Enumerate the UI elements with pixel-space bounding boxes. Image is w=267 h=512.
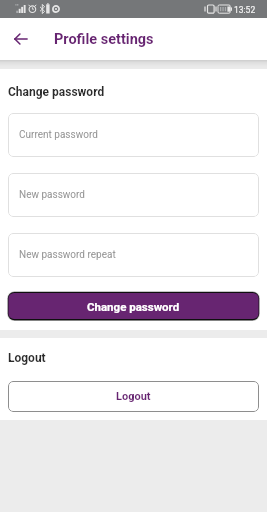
button[interactable]: Change password (7, 291, 260, 321)
staticText: Logout (8, 351, 46, 365)
staticText: Current password (19, 129, 98, 141)
staticText: 13:52 (234, 5, 256, 15)
staticText: Change password (8, 85, 105, 99)
staticText: New password (19, 189, 85, 201)
staticText: Logout (116, 390, 151, 403)
button[interactable]: New password repeat (8, 233, 259, 277)
button[interactable]: Current password (8, 113, 259, 157)
staticText: New password repeat (19, 249, 116, 261)
staticText: Profile settings (54, 31, 154, 48)
button[interactable]: Logout (8, 381, 259, 412)
button[interactable]: New password (8, 173, 259, 217)
button[interactable]: Back (9, 27, 33, 51)
staticText: Change password (87, 300, 180, 313)
